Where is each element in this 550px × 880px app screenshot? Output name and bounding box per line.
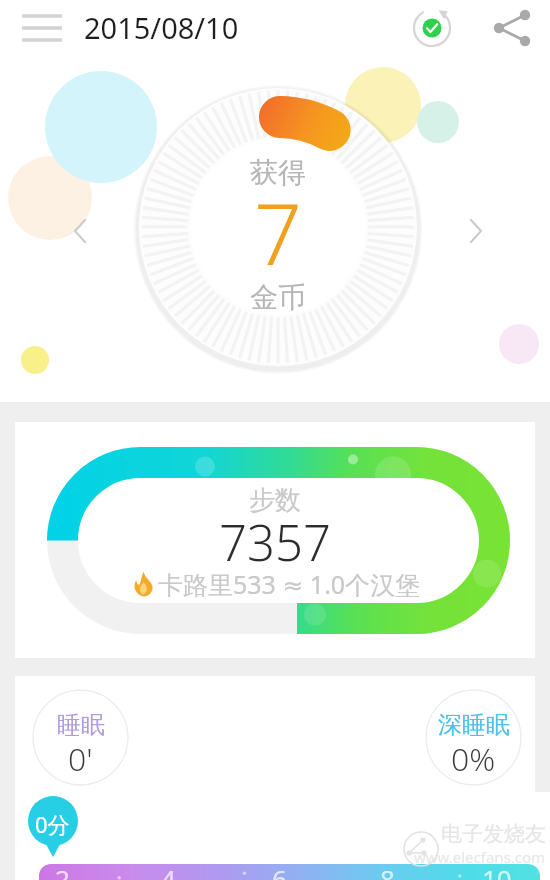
staticText: 10 [482, 861, 512, 880]
button[interactable]: 深睡眠 [425, 689, 522, 786]
staticText: 4 [161, 861, 176, 880]
staticText: 0% [451, 737, 496, 781]
staticText: 电子发烧友 [441, 821, 546, 847]
staticText: 7357 [219, 509, 331, 576]
staticText: 获得 [250, 155, 306, 190]
staticText: 2015/08/10 [84, 8, 239, 47]
staticText: 0分 [35, 809, 70, 839]
staticText: 6 [272, 861, 287, 880]
button[interactable]: 0分 [28, 796, 78, 858]
staticText: 睡眠 [57, 710, 105, 740]
staticText: 7 [254, 175, 302, 289]
button[interactable]: 步数 [15, 422, 535, 658]
staticText: 金币 [250, 280, 306, 315]
button[interactable]: Menu [12, 4, 72, 52]
staticText: www.elecfans.com [414, 847, 546, 867]
staticText: 卡路里533 ≈ 1.0个汉堡 [158, 567, 421, 601]
staticText: 0' [68, 737, 93, 781]
button[interactable]: Sync [402, 4, 462, 52]
staticText: 深睡眠 [438, 710, 510, 740]
staticText: 步数 [249, 484, 301, 517]
button[interactable]: Share [483, 4, 543, 52]
staticText: 2 [55, 861, 70, 880]
button[interactable]: 睡眠 [32, 689, 129, 786]
staticText: 8 [380, 861, 395, 880]
